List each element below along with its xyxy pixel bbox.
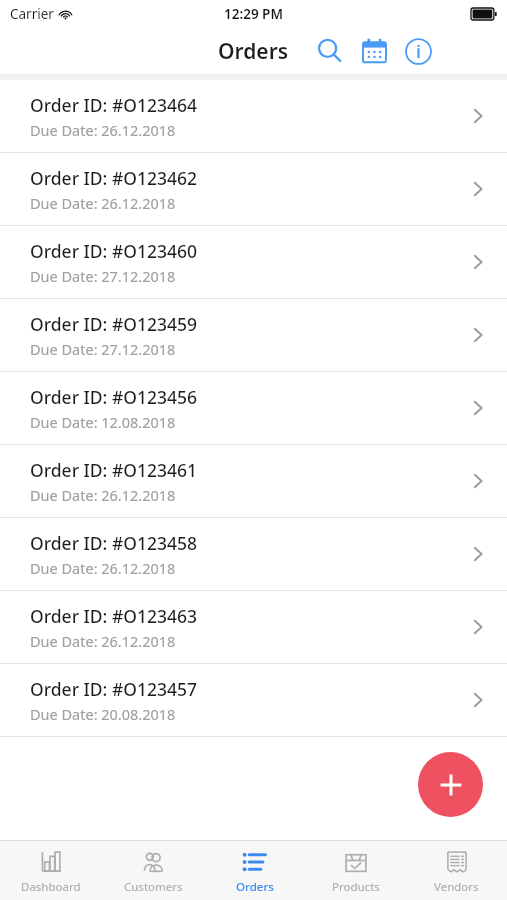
staticText: Order ID: #O123464 xyxy=(30,93,198,117)
staticText: Order ID: #O123459 xyxy=(30,312,198,336)
staticText: Due Date: 27.12.2018 xyxy=(30,339,176,359)
button[interactable]: Add order xyxy=(418,752,483,817)
button[interactable]: Customers xyxy=(102,841,204,900)
button[interactable]: Orders xyxy=(204,841,305,900)
staticText: Products xyxy=(332,879,380,895)
button[interactable]: Products xyxy=(305,841,406,900)
button[interactable]: Vendors xyxy=(406,841,507,900)
button[interactable]: Order ID: #O123463 xyxy=(0,591,507,664)
button[interactable]: Order ID: #O123457 xyxy=(0,664,507,737)
staticText: Orders xyxy=(236,879,274,895)
staticText: Order ID: #O123462 xyxy=(30,166,198,190)
staticText: Due Date: 26.12.2018 xyxy=(30,120,176,140)
staticText: Due Date: 27.12.2018 xyxy=(30,266,176,286)
button[interactable]: Order ID: #O123464 xyxy=(0,80,507,153)
button[interactable]: Search xyxy=(309,30,351,72)
staticText: Carrier xyxy=(10,5,54,23)
staticText: Due Date: 26.12.2018 xyxy=(30,193,176,213)
staticText: Due Date: 20.08.2018 xyxy=(30,704,176,724)
staticText: Orders xyxy=(218,37,289,66)
staticText: Order ID: #O123456 xyxy=(30,385,198,409)
staticText: Customers xyxy=(124,879,183,895)
button[interactable]: Dashboard xyxy=(0,841,102,900)
button[interactable]: Order ID: #O123458 xyxy=(0,518,507,591)
staticText: Order ID: #O123458 xyxy=(30,531,198,555)
button[interactable]: Order ID: #O123456 xyxy=(0,372,507,445)
staticText: Vendors xyxy=(434,879,479,895)
staticText: Order ID: #O123463 xyxy=(30,604,198,628)
button[interactable]: Calendar xyxy=(353,30,395,72)
button[interactable]: Order ID: #O123460 xyxy=(0,226,507,299)
staticText: Dashboard xyxy=(21,879,81,895)
staticText: Order ID: #O123457 xyxy=(30,677,198,701)
staticText: Due Date: 12.08.2018 xyxy=(30,412,176,432)
button[interactable]: Order ID: #O123461 xyxy=(0,445,507,518)
staticText: Due Date: 26.12.2018 xyxy=(30,558,176,578)
staticText: Due Date: 26.12.2018 xyxy=(30,631,176,651)
staticText: 12:29 PM xyxy=(224,5,283,23)
staticText: Order ID: #O123460 xyxy=(30,239,198,263)
button[interactable]: Info xyxy=(397,30,439,72)
button[interactable]: Order ID: #O123462 xyxy=(0,153,507,226)
staticText: Due Date: 26.12.2018 xyxy=(30,485,176,505)
button[interactable]: Order ID: #O123459 xyxy=(0,299,507,372)
staticText: Order ID: #O123461 xyxy=(30,458,198,482)
